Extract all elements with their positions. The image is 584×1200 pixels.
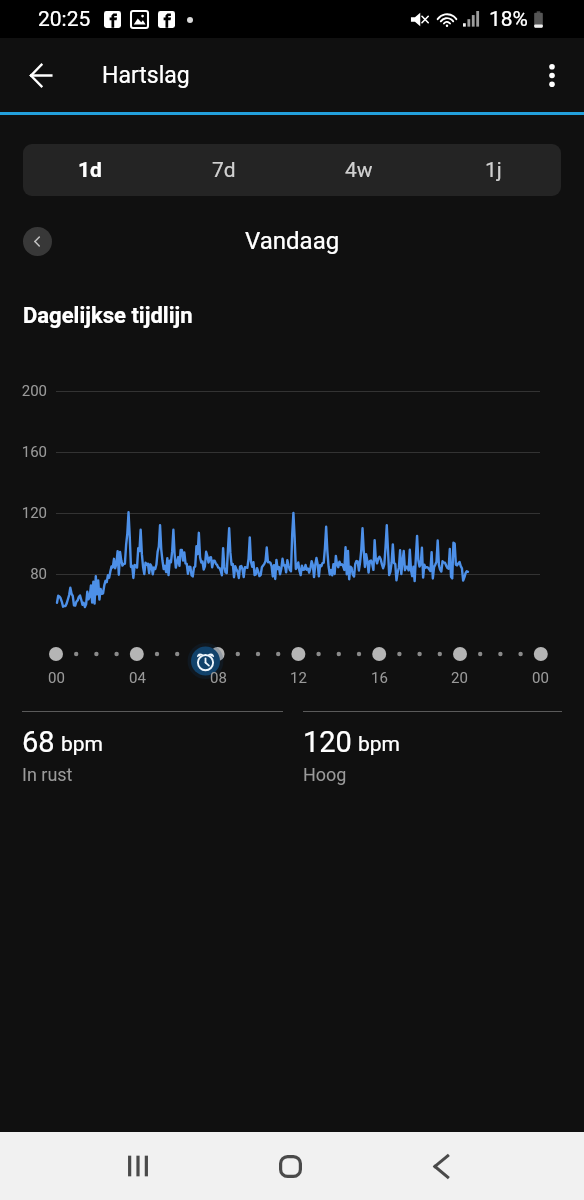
staticText: 4w: [345, 158, 373, 183]
staticText: 12: [290, 669, 307, 687]
staticText: 18%: [489, 7, 528, 32]
staticText: Hoog: [303, 764, 347, 785]
staticText: 68: [22, 725, 55, 759]
button[interactable]: 68: [22, 711, 283, 785]
staticText: bpm: [358, 732, 400, 757]
button[interactable]: 1d: [23, 144, 157, 196]
staticText: 08: [210, 669, 227, 687]
button[interactable]: Previous day: [23, 227, 52, 256]
staticText: 160: [21, 443, 47, 461]
staticText: 20: [451, 669, 468, 687]
button[interactable]: 1j: [426, 144, 561, 196]
button[interactable]: Back: [407, 1132, 475, 1200]
staticText: 1j: [485, 158, 502, 183]
staticText: 120: [21, 504, 47, 522]
button[interactable]: Recent apps: [104, 1132, 172, 1200]
staticText: 04: [129, 669, 146, 687]
staticText: Dagelijkse tijdlijn: [23, 303, 193, 329]
staticText: Hartslag: [102, 62, 190, 89]
button[interactable]: 4w: [291, 144, 426, 196]
staticText: 80: [30, 565, 47, 583]
button[interactable]: Back: [18, 52, 64, 98]
staticText: In rust: [22, 764, 73, 785]
staticText: 20:25: [38, 7, 91, 32]
staticText: 1d: [78, 158, 102, 183]
button[interactable]: More options: [529, 52, 575, 98]
staticText: 120: [303, 725, 352, 759]
staticText: 200: [21, 382, 47, 400]
staticText: 00: [532, 669, 549, 687]
staticText: bpm: [61, 732, 103, 757]
button[interactable]: 7d: [157, 144, 291, 196]
staticText: 16: [371, 669, 388, 687]
staticText: Vandaag: [245, 227, 340, 255]
staticText: 7d: [212, 158, 236, 183]
button[interactable]: Home: [256, 1132, 324, 1200]
staticText: 00: [48, 669, 65, 687]
button[interactable]: 120: [303, 711, 562, 785]
